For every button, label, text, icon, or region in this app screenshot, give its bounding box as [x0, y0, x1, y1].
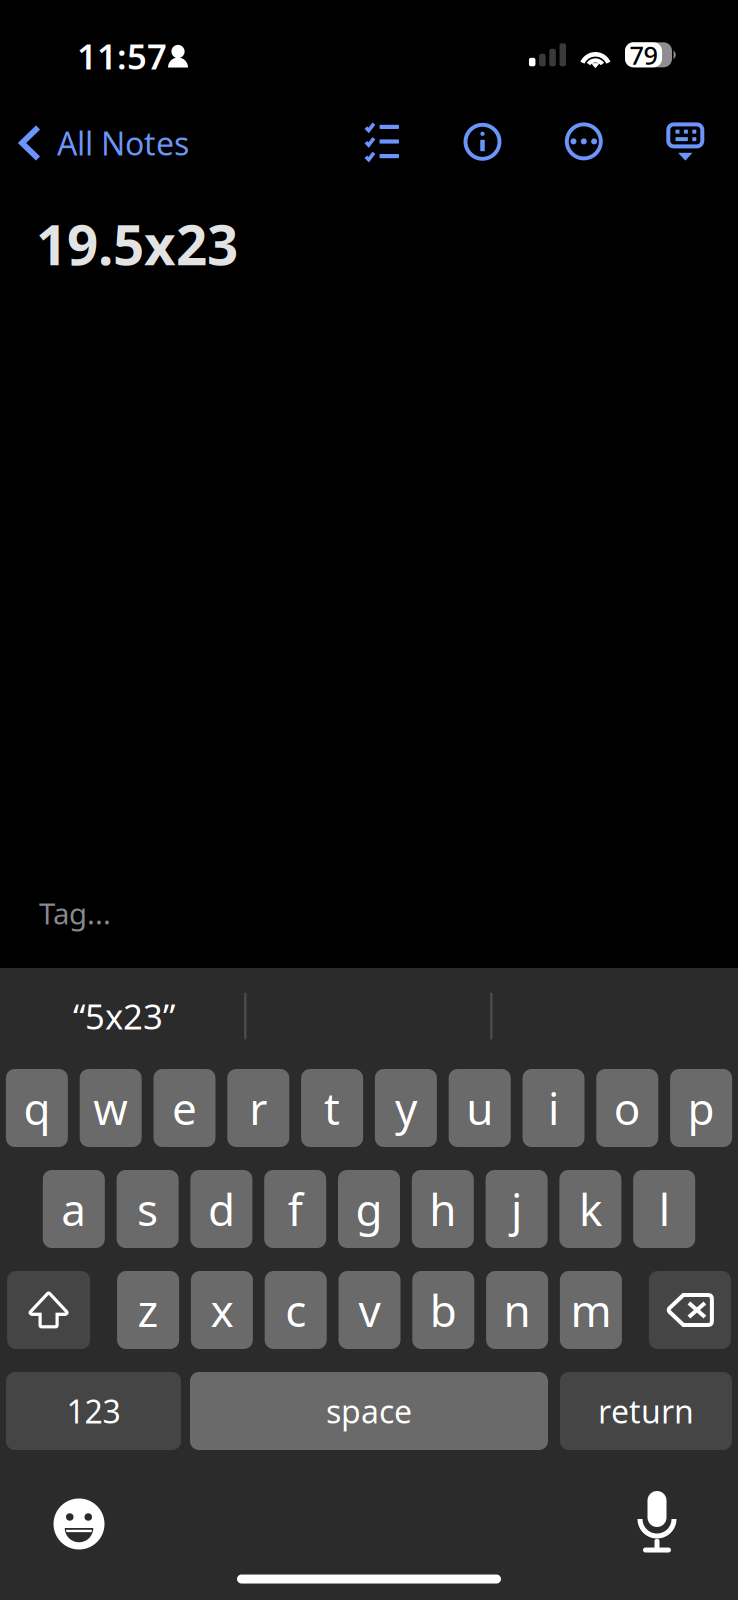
staticText: g [355, 1180, 382, 1238]
staticText: space [326, 1390, 412, 1432]
button[interactable]: x [191, 1271, 253, 1349]
staticText: o [614, 1079, 641, 1137]
staticText: c [285, 1281, 306, 1339]
staticText: w [93, 1079, 128, 1137]
staticText: 19.5x23 [36, 208, 238, 280]
staticText: 123 [66, 1390, 120, 1432]
staticText: m [570, 1281, 611, 1339]
button[interactable]: Info [444, 107, 520, 177]
button[interactable]: Delete [649, 1271, 731, 1349]
button[interactable]: t [301, 1069, 363, 1147]
staticText: 79 [629, 38, 657, 72]
button[interactable]: z [117, 1271, 179, 1349]
button[interactable]: w [80, 1069, 142, 1147]
button[interactable]: e [153, 1069, 215, 1147]
staticText: return [598, 1390, 694, 1432]
staticText: b [430, 1281, 457, 1339]
button[interactable]: o [596, 1069, 658, 1147]
staticText: e [172, 1079, 197, 1137]
button[interactable]: q [6, 1069, 68, 1147]
button[interactable]: y [375, 1069, 437, 1147]
staticText: s [137, 1180, 158, 1238]
button[interactable]: p [670, 1069, 732, 1147]
button[interactable]: k [559, 1170, 621, 1248]
staticText: u [466, 1079, 493, 1137]
staticText: n [504, 1281, 531, 1339]
staticText: “5x23” [73, 993, 175, 1039]
button[interactable]: l [633, 1170, 695, 1248]
button[interactable]: i [522, 1069, 584, 1147]
staticText: r [249, 1079, 267, 1137]
button[interactable]: Dictate [621, 1486, 693, 1558]
button[interactable]: g [338, 1170, 400, 1248]
staticText: i [548, 1079, 559, 1137]
button[interactable]: m [560, 1271, 622, 1349]
staticText: a [61, 1180, 86, 1238]
staticText: t [324, 1079, 340, 1137]
button[interactable]: v [338, 1271, 400, 1349]
button[interactable]: Hide Keyboard [647, 106, 723, 176]
staticText: j [511, 1180, 522, 1238]
button[interactable]: u [449, 1069, 511, 1147]
button[interactable]: s [117, 1170, 179, 1248]
staticText: d [208, 1180, 235, 1238]
button[interactable]: Emoji [43, 1488, 115, 1560]
staticText: l [659, 1180, 670, 1238]
button[interactable]: d [190, 1170, 252, 1248]
button[interactable]: r [227, 1069, 289, 1147]
staticText: All Notes [57, 122, 189, 164]
button[interactable]: space [190, 1372, 548, 1450]
staticText: k [579, 1180, 602, 1238]
staticText: f [288, 1180, 303, 1238]
staticText: x [210, 1281, 233, 1339]
staticText: z [138, 1281, 159, 1339]
staticText: Tag... [39, 893, 111, 932]
staticText: h [429, 1180, 456, 1238]
button[interactable]: h [412, 1170, 474, 1248]
button[interactable]: More [546, 106, 622, 176]
button[interactable]: 123 [6, 1372, 181, 1450]
button[interactable]: j [486, 1170, 548, 1248]
staticText: y [395, 1079, 417, 1137]
staticText: v [358, 1281, 380, 1339]
button[interactable]: a [43, 1170, 105, 1248]
button[interactable]: All Notes [0, 107, 260, 179]
staticText: q [23, 1079, 50, 1137]
staticText: p [688, 1079, 715, 1137]
button[interactable]: n [486, 1271, 548, 1349]
button[interactable]: return [560, 1372, 732, 1450]
button[interactable]: c [265, 1271, 327, 1349]
button[interactable]: Shift [7, 1271, 90, 1349]
button[interactable]: Tag... [39, 887, 269, 939]
button[interactable]: f [264, 1170, 326, 1248]
staticText: 11:57 [77, 33, 167, 79]
button[interactable]: Checklist [343, 106, 419, 176]
button[interactable]: b [412, 1271, 474, 1349]
